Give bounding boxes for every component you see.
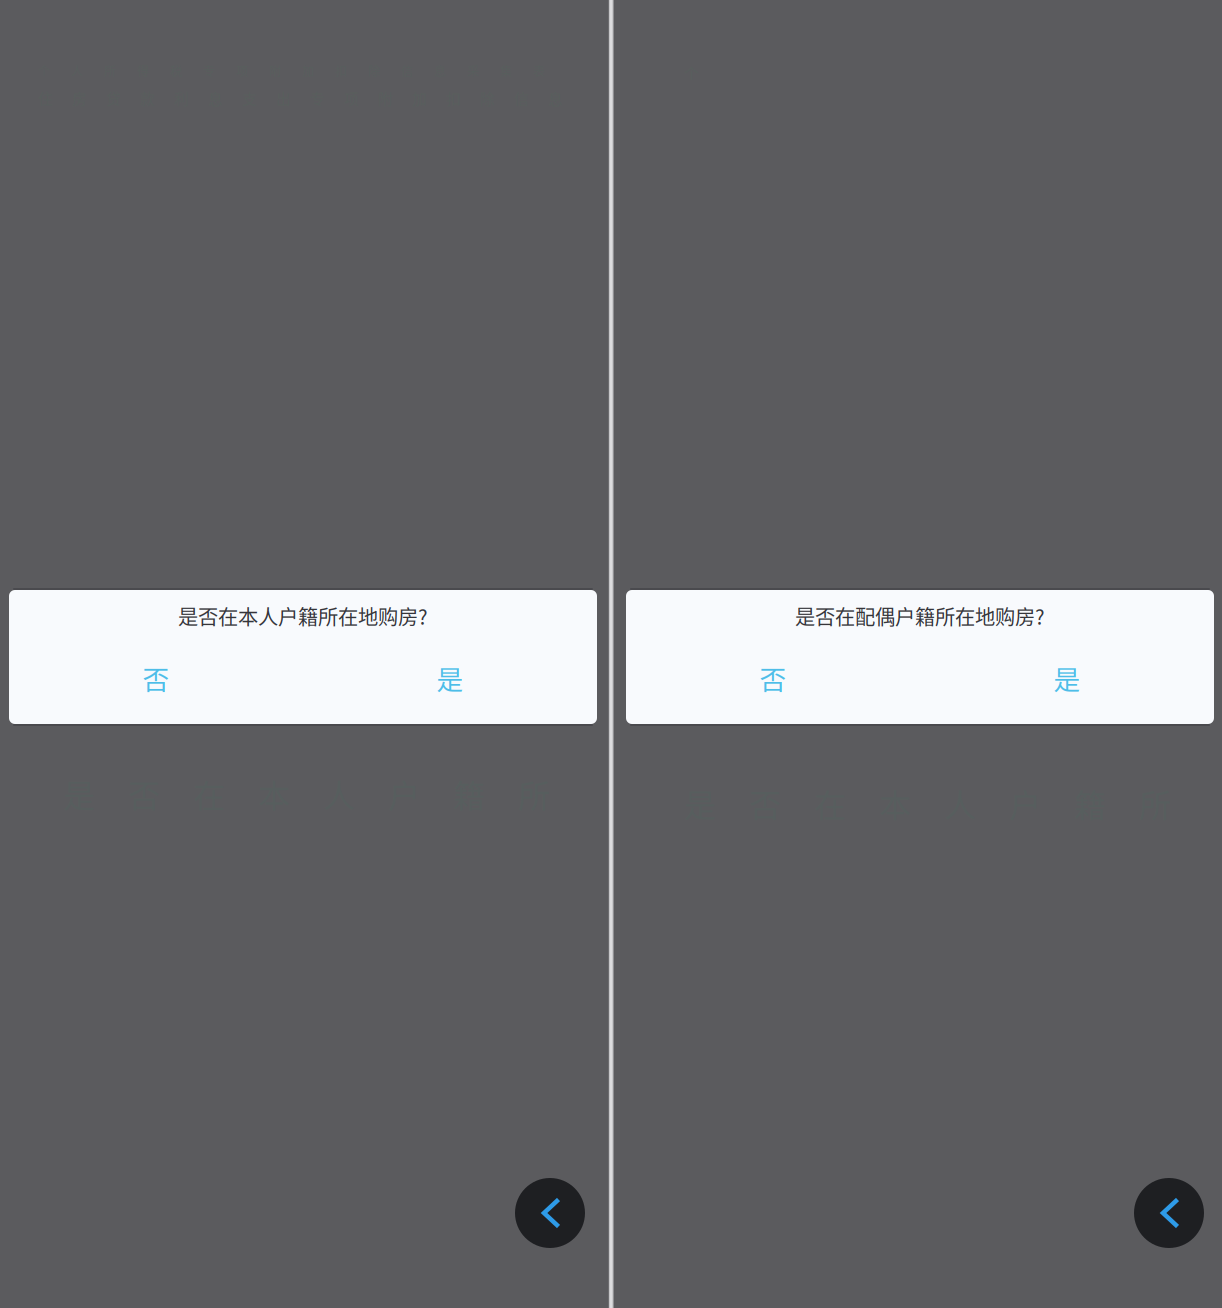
button[interactable]: 是 xyxy=(303,646,597,710)
button[interactable]: Back xyxy=(515,1178,585,1248)
staticText: 否 xyxy=(142,659,169,697)
staticText: 否 xyxy=(759,659,786,697)
button[interactable]: Back xyxy=(1134,1178,1204,1248)
staticText: 是否在配偶户籍所在地购房? xyxy=(795,601,1045,631)
staticText: 是否在本人户籍所在地购房? xyxy=(178,601,428,631)
staticText: 是 xyxy=(1053,659,1080,697)
button[interactable]: 否 xyxy=(626,646,920,710)
button[interactable]: 是 xyxy=(920,646,1214,710)
button[interactable]: 否 xyxy=(9,646,303,710)
staticText: 是 xyxy=(436,659,463,697)
